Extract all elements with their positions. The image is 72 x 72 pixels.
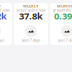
staticText: active users now	[0, 7, 9, 13]
staticText: past 7 days	[0, 37, 4, 43]
button[interactable]: WEEKLY	[14, 3, 48, 45]
button[interactable]: DAILY	[0, 3, 12, 45]
staticText: WEEKLY	[23, 3, 39, 9]
staticText: MONTHLY	[57, 3, 72, 9]
staticText: active users now	[16, 7, 45, 13]
staticText: past 7 days	[21, 37, 40, 43]
button[interactable]: MONTHLY	[50, 3, 72, 45]
staticText: 14.2k	[0, 10, 7, 22]
staticText: 37.8k	[19, 10, 43, 22]
staticText: past 7 days	[57, 37, 72, 43]
staticText: DAILY	[0, 3, 1, 9]
staticText: growth this week	[52, 7, 72, 13]
staticText: 0.39%	[54, 10, 72, 22]
